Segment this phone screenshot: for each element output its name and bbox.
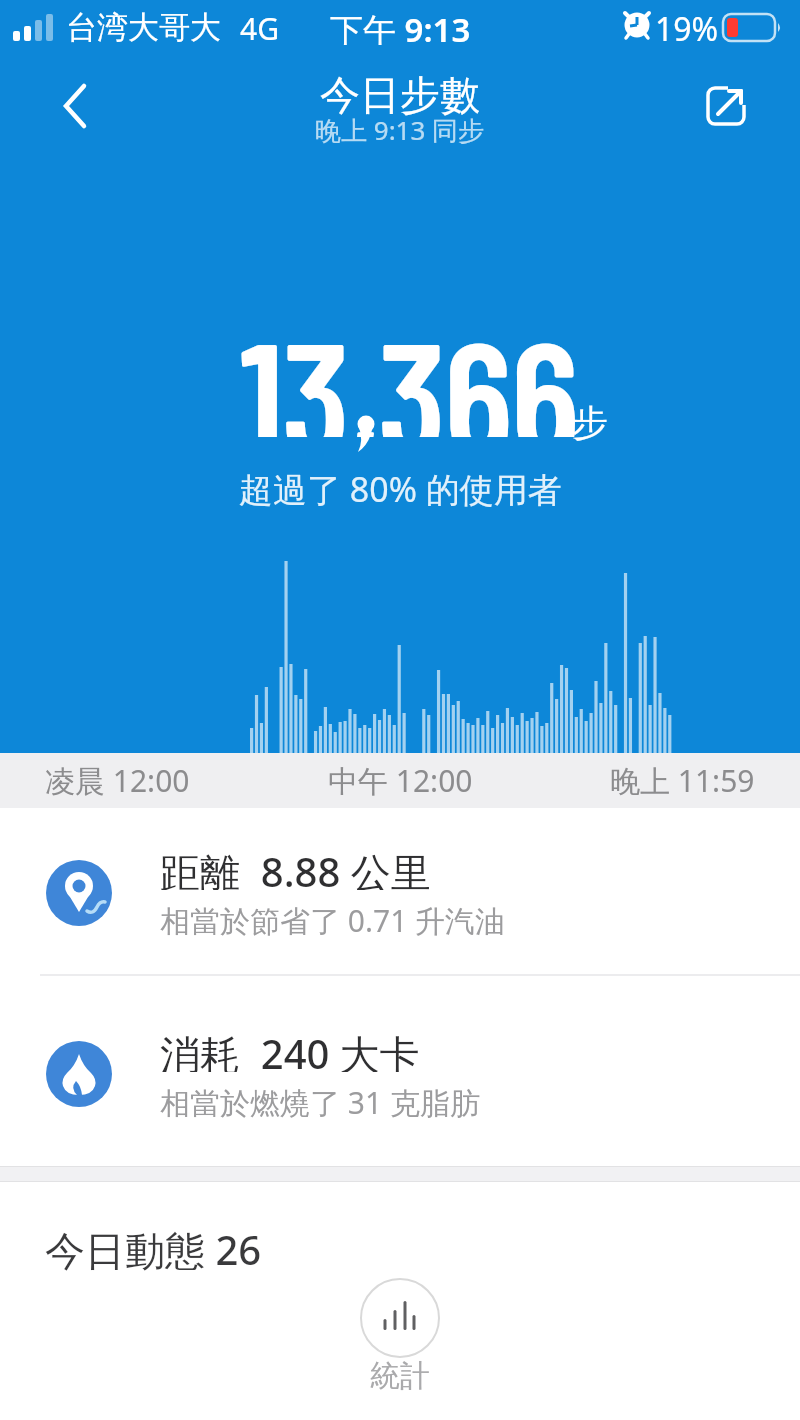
button[interactable] xyxy=(694,74,758,138)
button[interactable]: 距離 8.88 公里 xyxy=(0,808,800,975)
staticText: 超過了 80% 的使用者 xyxy=(239,466,562,510)
staticText: 19% xyxy=(655,7,719,45)
staticText: 步 xyxy=(572,400,608,444)
staticText: 消耗 240 大卡 xyxy=(160,1026,420,1072)
staticText: 凌晨 12:00 xyxy=(45,760,190,801)
staticText: 今日動態 26 xyxy=(45,1222,262,1272)
staticText: 相當於燃燒了 31 克脂肪 xyxy=(160,1082,480,1118)
button[interactable]: 消耗 240 大卡 xyxy=(0,976,800,1148)
staticText: 統計 xyxy=(370,1357,430,1395)
staticText: 13,366 xyxy=(240,297,578,437)
staticText: 距離 8.88 公里 xyxy=(160,844,431,890)
staticText: 台湾大哥大 xyxy=(66,8,221,46)
staticText: 晚上 9:13 同步 xyxy=(315,112,485,144)
staticText: 今日步數 xyxy=(320,70,480,116)
button[interactable]: 統計 xyxy=(330,1248,470,1420)
staticText: 下午 9:13 xyxy=(330,7,471,45)
staticText: 4G xyxy=(240,8,279,46)
staticText: 相當於節省了 0.71 升汽油 xyxy=(160,900,506,936)
button[interactable] xyxy=(50,76,110,136)
staticText: 中午 12:00 xyxy=(328,760,473,801)
staticText: 晚上 11:59 xyxy=(610,760,755,801)
